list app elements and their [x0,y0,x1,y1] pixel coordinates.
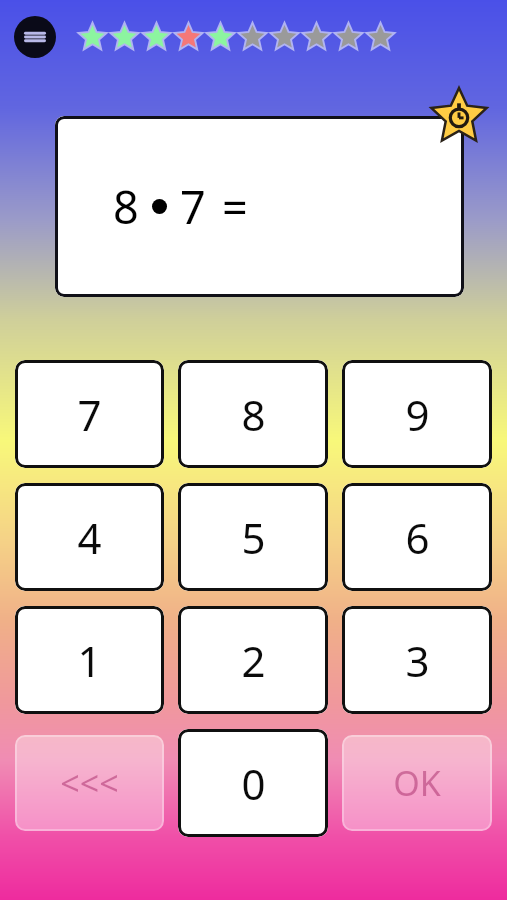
staticText: = [222,176,248,237]
button[interactable]: 5 [178,483,328,591]
staticText: 8 [241,386,266,443]
staticText: 0 [241,755,266,812]
button[interactable]: 7 [15,360,164,468]
staticText: 4 [77,509,102,566]
button[interactable]: 8 [55,116,464,297]
button[interactable]: 8 [178,360,328,468]
button[interactable]: 9 [342,360,492,468]
button[interactable]: 3 [342,606,492,714]
button[interactable]: Timer [429,87,489,147]
staticText: 2 [241,632,266,689]
staticText: 8 [113,176,139,237]
staticText: OK [393,760,441,806]
staticText: 7 [180,176,206,237]
staticText: 7 [77,386,102,443]
button[interactable]: 2 [178,606,328,714]
staticText: 1 [77,632,102,689]
button[interactable]: 4 [15,483,164,591]
button[interactable]: <<< [15,735,164,831]
button[interactable]: 6 [342,483,492,591]
staticText: 9 [405,386,430,443]
button[interactable]: Menu [14,16,56,58]
staticText: <<< [60,760,119,806]
button[interactable]: OK [342,735,492,831]
button[interactable]: 1 [15,606,164,714]
staticText: 5 [241,509,266,566]
button[interactable]: 0 [178,729,328,837]
staticText: 6 [405,509,430,566]
staticText: 3 [405,632,430,689]
